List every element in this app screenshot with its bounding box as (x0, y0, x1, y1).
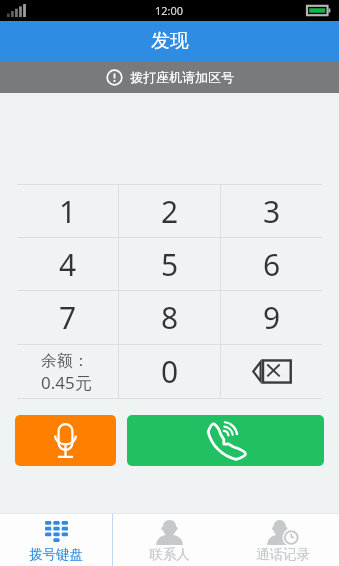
staticText: 拨号键盘 (29, 546, 83, 563)
staticText: 联系人 (149, 546, 190, 563)
staticText: 7 (59, 297, 77, 338)
button[interactable]: 拨打座机请加区号 (0, 61, 339, 93)
staticText: 8 (161, 297, 179, 338)
button[interactable]: 拨号键盘 (0, 513, 112, 566)
button[interactable]: 5 (119, 238, 220, 290)
button[interactable]: 余额： (17, 345, 118, 398)
staticText: 4 (59, 244, 77, 285)
staticText: 0.45元 (41, 371, 92, 394)
button[interactable]: 4 (17, 238, 118, 290)
staticText: 3 (263, 191, 281, 232)
button[interactable]: Voice dial (15, 415, 116, 466)
button[interactable]: 联系人 (113, 513, 226, 566)
staticText: 1 (59, 191, 77, 232)
button[interactable]: 发现 (0, 21, 339, 61)
button[interactable]: 通话记录 (226, 513, 339, 566)
button[interactable]: Call (127, 415, 324, 466)
staticText: 5 (161, 244, 179, 285)
button[interactable]: 0 (119, 345, 220, 398)
staticText: 2 (161, 191, 179, 232)
staticText: 发现 (151, 29, 189, 53)
staticText: 6 (263, 244, 281, 285)
button[interactable]: 8 (119, 291, 220, 344)
staticText: 12:00 (155, 3, 184, 18)
staticText: 拨打座机请加区号 (130, 69, 234, 85)
button[interactable]: 1 (17, 185, 118, 237)
button[interactable]: Backspace (221, 345, 322, 398)
button[interactable]: 3 (221, 185, 322, 237)
staticText: 0 (161, 351, 179, 392)
staticText: 余额： (41, 351, 89, 371)
staticText: 9 (263, 297, 281, 338)
button[interactable]: 7 (17, 291, 118, 344)
button[interactable]: 6 (221, 238, 322, 290)
staticText: 通话记录 (256, 546, 310, 563)
button[interactable]: 9 (221, 291, 322, 344)
button[interactable]: 2 (119, 185, 220, 237)
